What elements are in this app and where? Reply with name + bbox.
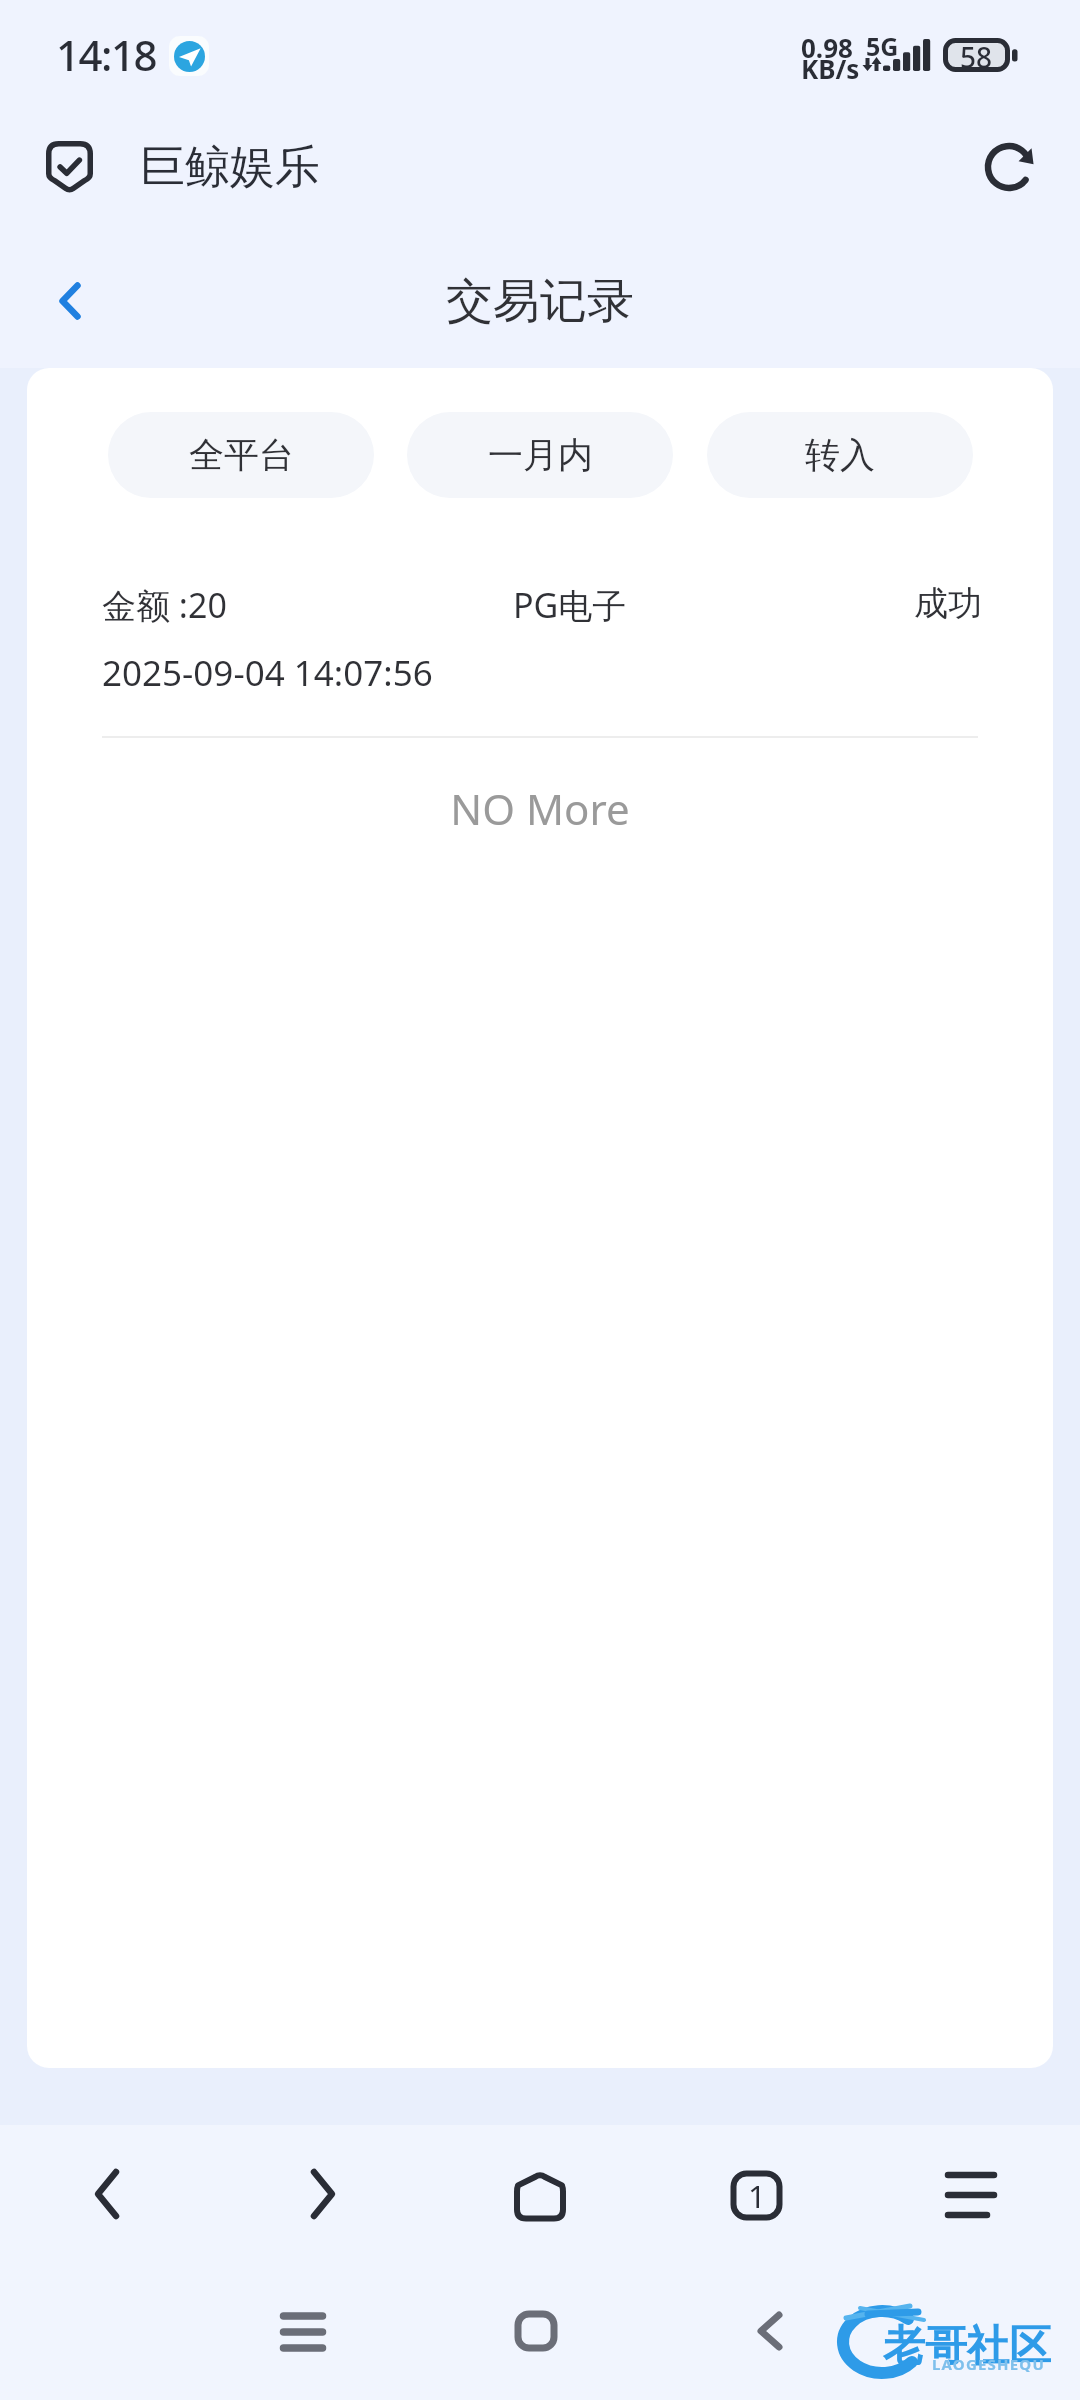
button[interactable]: Refresh	[974, 132, 1044, 202]
staticText: 转入	[805, 433, 875, 477]
staticText: 巨鲸娱乐	[140, 139, 320, 191]
button[interactable]: Menu	[911, 2135, 1031, 2255]
staticText: 1	[748, 2175, 766, 2217]
button[interactable]: Back	[47, 2134, 167, 2254]
staticText: 58	[960, 38, 993, 72]
staticText: 14:18	[56, 26, 157, 80]
staticText: 金额 :20	[102, 582, 227, 626]
staticText: 0.98	[801, 30, 853, 60]
button[interactable]: Recents	[243, 2272, 363, 2392]
staticText: KB/s	[801, 51, 860, 81]
staticText: LAOGESHEQU	[932, 2354, 1045, 2372]
staticText: 交易记录	[446, 272, 634, 328]
staticText: 一月内	[488, 433, 593, 477]
staticText: PG电子	[513, 582, 627, 626]
button[interactable]: 转入	[707, 412, 973, 498]
staticText: 成功	[914, 582, 982, 625]
staticText: 老哥社区	[883, 2320, 1051, 2366]
button[interactable]: 全平台	[108, 412, 374, 498]
button[interactable]: Back	[35, 266, 105, 336]
button[interactable]: Home	[476, 2271, 596, 2391]
staticText: NO More	[450, 780, 630, 832]
staticText: 全平台	[189, 433, 294, 477]
staticText: 5G	[866, 29, 899, 59]
button[interactable]: 金额 :20	[102, 568, 978, 738]
button[interactable]: Back	[710, 2271, 830, 2391]
button[interactable]: Tabs	[696, 2135, 816, 2255]
staticText: 2025-09-04 14:07:56	[102, 649, 433, 693]
button[interactable]: Home	[480, 2136, 600, 2256]
button[interactable]: Forward	[263, 2134, 383, 2254]
button[interactable]: Site security	[36, 132, 102, 202]
button[interactable]: 一月内	[407, 412, 673, 498]
